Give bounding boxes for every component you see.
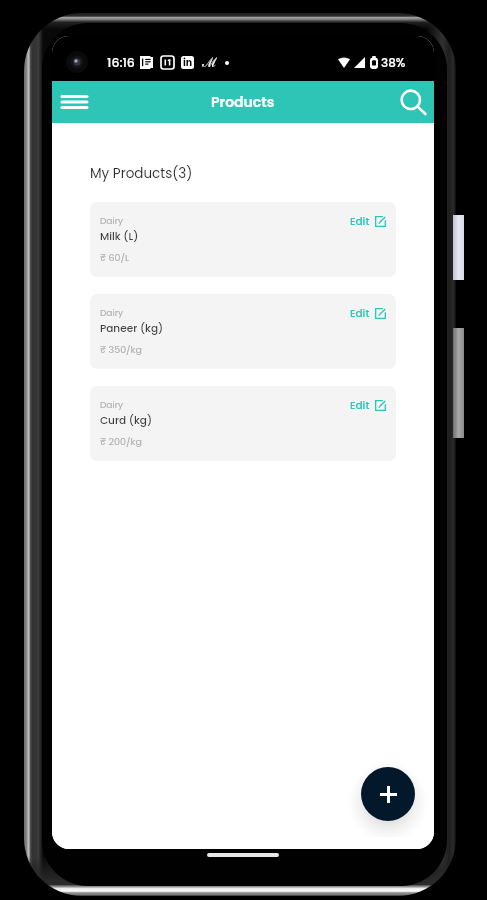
staticText: ₹ 200/kg	[100, 435, 142, 448]
staticText: Dairy	[100, 399, 124, 412]
staticText: Edit	[350, 214, 370, 229]
button[interactable]: Dairy	[90, 202, 396, 277]
staticText: ₹ 60/L	[100, 251, 130, 264]
button[interactable]: Dairy	[90, 294, 396, 369]
button[interactable]: Search	[397, 85, 431, 119]
staticText: Curd (kg)	[100, 413, 153, 428]
staticText: 38%	[381, 54, 406, 71]
staticText: in	[183, 56, 193, 69]
staticText: Dairy	[100, 307, 124, 320]
button[interactable]: Dairy	[90, 386, 396, 461]
staticText: My Products(3)	[90, 164, 193, 183]
staticText: Edit	[350, 398, 370, 413]
staticText: Paneer (kg)	[100, 321, 164, 336]
staticText: 16:16	[107, 54, 135, 71]
staticText: Milk (L)	[100, 229, 139, 244]
button[interactable]: Edit	[350, 214, 386, 229]
staticText: ℳ	[202, 53, 218, 71]
staticText: Products	[211, 92, 275, 112]
staticText: Edit	[350, 306, 370, 321]
button[interactable]: Add product	[361, 767, 415, 821]
button[interactable]: Edit	[350, 398, 386, 413]
staticText: ₹ 350/kg	[100, 343, 142, 356]
button[interactable]: Open navigation menu	[57, 85, 91, 119]
staticText: Dairy	[100, 215, 124, 228]
button[interactable]: Edit	[350, 306, 386, 321]
